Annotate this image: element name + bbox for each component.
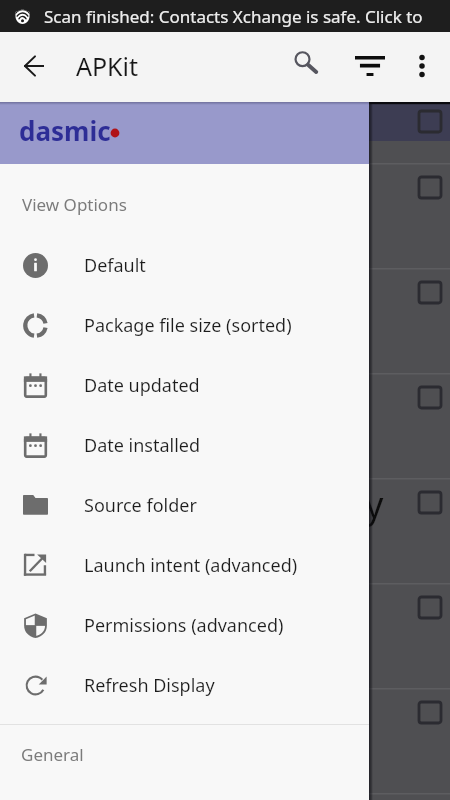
button[interactable]: Sort and filter (348, 44, 392, 88)
button[interactable]: Default (0, 235, 369, 295)
button[interactable]: Navigate up (12, 44, 56, 88)
staticText: Date updated (84, 373, 200, 398)
staticText: Refresh Display (84, 673, 215, 698)
staticText: y (365, 480, 384, 529)
staticText: Source folder (84, 493, 197, 518)
button[interactable]: Search (283, 40, 327, 84)
button[interactable]: Date installed (0, 415, 369, 475)
staticText: Launch intent (advanced) (84, 553, 298, 578)
button[interactable]: Date updated (0, 355, 369, 415)
staticText: Permissions (advanced) (84, 613, 284, 638)
staticText: View Options (22, 193, 127, 216)
staticText: Date installed (84, 433, 201, 458)
button[interactable]: dasmic (0, 102, 369, 164)
staticText: Scan finished: Contacts Xchange is safe.… (44, 5, 423, 28)
button[interactable]: Launch intent (advanced) (0, 535, 369, 595)
staticText: dasmic (19, 113, 111, 148)
button[interactable]: Source folder (0, 475, 369, 535)
staticText: General (21, 743, 84, 766)
button[interactable]: Refresh Display (0, 655, 369, 715)
staticText: Default (84, 253, 146, 278)
staticText: APKit (76, 49, 139, 83)
staticText: Package file size (sorted) (84, 313, 292, 338)
button[interactable]: More options (400, 44, 444, 88)
button[interactable]: Package file size (sorted) (0, 295, 369, 355)
button[interactable]: Permissions (advanced) (0, 595, 369, 655)
